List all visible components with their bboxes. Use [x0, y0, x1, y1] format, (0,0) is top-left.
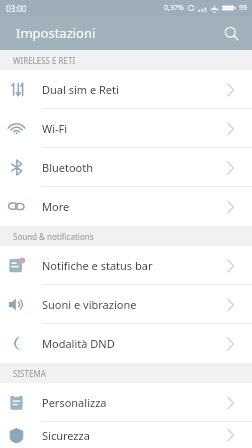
- staticText: SISTEMA: [13, 368, 46, 379]
- button[interactable]: Bluetooth: [0, 148, 252, 187]
- button[interactable]: Personalizza: [0, 383, 252, 422]
- staticText: 03:00: [6, 3, 27, 14]
- staticText: WIRELESS E RETI: [13, 55, 76, 66]
- staticText: Bluetooth: [42, 160, 227, 175]
- button[interactable]: Modalità DND: [0, 324, 252, 363]
- staticText: Impostazioni: [16, 24, 96, 42]
- button[interactable]: Suoni e vibrazione: [0, 285, 252, 324]
- staticText: Sicurezza: [42, 428, 227, 443]
- staticText: Wi-Fi: [42, 121, 227, 136]
- button[interactable]: Dual sim e Reti: [0, 70, 252, 109]
- button[interactable]: More: [0, 187, 252, 226]
- staticText: Modalità DND: [42, 336, 227, 351]
- button[interactable]: Notifiche e status bar: [0, 246, 252, 285]
- button[interactable]: Wi-Fi: [0, 109, 252, 148]
- staticText: 99: [239, 3, 248, 13]
- staticText: 0,37%: [164, 3, 184, 13]
- staticText: Sound & notifications: [13, 231, 94, 242]
- staticText: Personalizza: [42, 395, 227, 410]
- button[interactable]: Sicurezza: [0, 422, 252, 448]
- staticText: More: [42, 199, 227, 214]
- button[interactable]: Search: [218, 20, 244, 46]
- staticText: Notifiche e status bar: [42, 258, 227, 273]
- staticText: Dual sim e Reti: [42, 82, 227, 97]
- staticText: Suoni e vibrazione: [42, 297, 227, 312]
